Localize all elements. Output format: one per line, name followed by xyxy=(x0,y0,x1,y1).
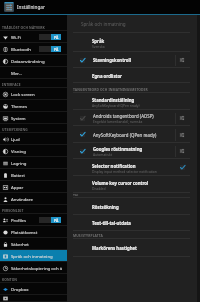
staticText: Standardinställning xyxy=(92,97,135,103)
button[interactable]: Användare xyxy=(0,193,67,205)
staticText: Språk xyxy=(92,38,105,44)
staticText: Visning xyxy=(11,148,26,154)
button[interactable]: Settings xyxy=(176,143,188,159)
button[interactable]: Batteri xyxy=(0,169,67,181)
staticText: Androids tangentbord (AOSP) xyxy=(93,113,154,119)
button[interactable]: Visning xyxy=(0,145,67,157)
button[interactable]: Androids tangentbord (AOSP) xyxy=(67,110,200,126)
button[interactable]: Egna ordlistor xyxy=(67,68,200,83)
button[interactable]: Lock screen xyxy=(0,88,67,100)
button[interactable]: Platsåtkomst xyxy=(0,226,67,238)
button[interactable]: Settings xyxy=(176,52,188,68)
staticText: INTERFACE xyxy=(2,82,21,86)
staticText: Themes xyxy=(11,103,27,109)
button[interactable]: Profiles xyxy=(0,214,67,226)
button[interactable]: Språk xyxy=(67,33,200,52)
button[interactable]: Röstsökning xyxy=(67,198,200,215)
staticText: Engelskt (amerikanskt), svenska xyxy=(93,119,143,123)
staticText: Selector notification xyxy=(92,163,136,169)
button[interactable]: Bluetooth xyxy=(0,43,67,55)
staticText: PÅ xyxy=(54,47,59,51)
staticText: Språk och inmatning xyxy=(11,253,53,259)
button[interactable]: Säkerhet xyxy=(0,238,67,250)
staticText: Stavningskontroll xyxy=(93,57,132,63)
staticText: Mer... xyxy=(11,70,22,76)
staticText: Röstsökning xyxy=(92,204,119,210)
button[interactable]: System xyxy=(0,112,67,124)
staticText: Bluetooth xyxy=(11,46,31,52)
staticText: Dataanvändning xyxy=(11,58,45,64)
button[interactable]: Standardinställning xyxy=(67,93,200,110)
staticText: AnySoftKeyboard (QPen ready) xyxy=(93,132,157,138)
button[interactable]: Ljud xyxy=(0,133,67,145)
staticText: Användare xyxy=(11,196,33,202)
staticText: PERSONLIGT xyxy=(2,208,24,212)
staticText: MUS/STYRPLATTA xyxy=(73,233,103,237)
button[interactable]: Volume key cursor control xyxy=(67,176,200,193)
staticText: Profiles xyxy=(11,217,27,223)
staticText: Wi-Fi xyxy=(11,34,21,40)
staticText: Display input method selector notificati… xyxy=(92,169,157,173)
staticText: KONTON xyxy=(2,277,18,281)
staticText: Egna ordlistor xyxy=(92,73,123,79)
button[interactable]: Settings xyxy=(176,126,188,143)
button[interactable]: Googles röstinmatning xyxy=(67,143,200,159)
staticText: Säkerhetskopiering och å xyxy=(11,265,63,271)
staticText: Lock screen xyxy=(11,91,35,97)
staticText: Platsåtkomst xyxy=(11,229,38,235)
button[interactable]: Mer... xyxy=(0,67,67,79)
button[interactable]: Språk och inmatning xyxy=(0,250,67,262)
staticText: TAL xyxy=(73,193,80,196)
button[interactable]: Selector notification xyxy=(67,159,200,176)
staticText: UTSMYCKNING xyxy=(2,127,28,131)
staticText: Googles röstinmatning xyxy=(93,146,143,152)
button[interactable]: Appar xyxy=(0,181,67,193)
staticText: TANGENTBORD OCH INMATNINGSMETODER xyxy=(73,87,148,91)
staticText: Svenska xyxy=(92,44,105,48)
staticText: Ljud xyxy=(11,136,20,142)
button[interactable] xyxy=(0,295,67,302)
staticText: Appar xyxy=(11,184,24,190)
button[interactable]: Dropbox xyxy=(0,283,67,295)
button[interactable]: Dataanvändning xyxy=(0,55,67,67)
staticText: Volume key cursor control xyxy=(92,180,149,186)
staticText: Batteri xyxy=(11,172,25,178)
staticText: AnySoftKeyboard (QPen ready) xyxy=(92,103,140,107)
staticText: Disabled xyxy=(92,186,106,190)
button[interactable]: AnySoftKeyboard (QPen ready) xyxy=(67,126,200,143)
button[interactable]: Wi-Fi xyxy=(0,31,67,43)
staticText: PÅ xyxy=(54,218,59,222)
button[interactable]: Settings xyxy=(176,110,188,126)
staticText: Språk och inmatning xyxy=(81,21,126,27)
button[interactable]: Stavningskontroll xyxy=(67,52,200,68)
button[interactable]: Markörens hastighet xyxy=(67,239,200,257)
staticText: Automatiskt xyxy=(93,152,112,156)
staticText: Lagring xyxy=(11,160,27,166)
button[interactable]: Säkerhetskopiering och å xyxy=(0,262,67,274)
staticText: PÅ xyxy=(54,35,59,39)
button[interactable]: Themes xyxy=(0,100,67,112)
button[interactable]: Lagring xyxy=(0,157,67,169)
staticText: System xyxy=(11,115,26,121)
button[interactable]: Text-till-tal-utdata xyxy=(67,215,200,231)
staticText: TRÅDLÖST OCH NÄTVERK xyxy=(2,25,45,29)
staticText: Dropbox xyxy=(11,286,29,292)
staticText: Inställningar xyxy=(17,4,45,10)
staticText: Text-till-tal-utdata xyxy=(92,220,131,226)
staticText: Säkerhet xyxy=(11,241,29,247)
staticText: Markörens hastighet xyxy=(92,245,137,251)
button[interactable]: Inställningar xyxy=(0,0,200,14)
